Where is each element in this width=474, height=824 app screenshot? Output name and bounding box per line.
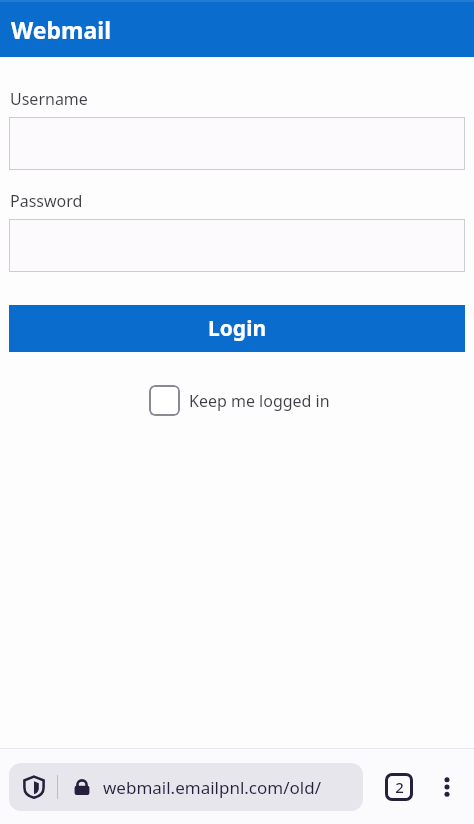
staticText: webmail.emailpnl.com/old/ (103, 776, 321, 799)
button[interactable] (9, 117, 465, 170)
button[interactable]: More options (427, 767, 467, 807)
button[interactable]: Tabs (381, 769, 417, 805)
staticText: Webmail (11, 14, 111, 45)
button[interactable]: Keep me logged in (149, 385, 474, 416)
staticText: Username (10, 88, 88, 110)
staticText: Login (208, 314, 267, 343)
staticText: 2 (395, 777, 404, 797)
button[interactable]: Login (9, 305, 465, 352)
button[interactable] (9, 219, 465, 272)
staticText: Password (10, 190, 83, 212)
staticText: Keep me logged in (189, 390, 330, 412)
button[interactable]: Brave Shields (21, 774, 47, 800)
button[interactable]: Brave Shields (9, 763, 363, 811)
